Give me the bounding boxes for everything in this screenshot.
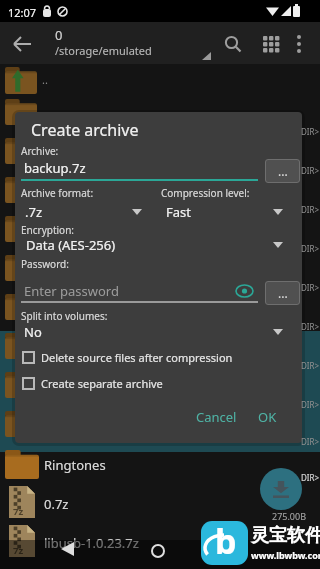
staticText: DIR> (301, 321, 320, 332)
staticText: DIR> (301, 399, 320, 410)
staticText: DIR> (301, 436, 320, 447)
button[interactable] (260, 468, 302, 510)
staticText: ... (278, 285, 288, 301)
staticText: Encryption: (21, 223, 75, 237)
button[interactable] (161, 199, 286, 219)
button[interactable] (22, 351, 35, 364)
button[interactable] (52, 536, 82, 562)
button[interactable]: OK (258, 408, 277, 426)
button[interactable] (22, 377, 35, 390)
staticText: b (215, 521, 237, 562)
staticText: DIR> (301, 282, 320, 293)
button[interactable] (233, 282, 255, 300)
staticText: DIR> (301, 204, 320, 215)
button[interactable] (286, 29, 312, 59)
staticText: Create archive (31, 119, 139, 141)
staticText: libusb-1.0.23.7z (44, 534, 139, 552)
staticText: Enter password (24, 282, 119, 300)
button[interactable]: ... (265, 159, 300, 183)
button[interactable] (21, 321, 286, 341)
staticText: DIR> (301, 360, 320, 371)
button[interactable]: ... (265, 281, 300, 305)
staticText: Create separate archive (41, 376, 163, 391)
staticText: Ringtones (44, 456, 106, 474)
button[interactable] (21, 232, 286, 252)
button[interactable] (0, 487, 320, 526)
button[interactable] (6, 28, 38, 60)
staticText: 灵宝软件 (251, 524, 320, 547)
staticText: 275.00B (272, 510, 307, 522)
staticText: /storage/emulated (55, 43, 152, 58)
staticText: No (24, 323, 42, 341)
staticText: Password: (21, 257, 69, 271)
staticText: www.lbwbw.com (251, 549, 320, 561)
staticText: 0.7z (44, 495, 69, 513)
staticText: 7z (13, 505, 24, 518)
staticText: DIR> (301, 472, 320, 483)
staticText: Delete source files after compression (41, 350, 233, 365)
staticText: .7z (25, 203, 43, 221)
staticText: Split into volumes: (21, 309, 108, 323)
button[interactable] (256, 29, 286, 59)
staticText: .. (42, 72, 48, 87)
button[interactable] (21, 199, 146, 219)
staticText: Archive: (21, 144, 59, 158)
button[interactable]: Cancel (196, 408, 237, 426)
staticText: Compression level: (161, 186, 250, 200)
button[interactable] (218, 29, 248, 59)
staticText: 7z (13, 544, 24, 557)
staticText: ... (278, 163, 288, 179)
staticText: Archive format: (21, 186, 94, 200)
button[interactable] (0, 526, 320, 565)
staticText: DIR> (301, 165, 320, 176)
button[interactable] (143, 538, 173, 564)
staticText: Data (AES-256) (26, 236, 116, 254)
button[interactable] (0, 448, 320, 487)
staticText: backup.7z (24, 159, 86, 177)
staticText: 12:07 (8, 5, 37, 20)
staticText: 0 (55, 26, 63, 44)
staticText: DIR> (301, 243, 320, 254)
staticText: Fast (166, 203, 191, 221)
staticText: DIR> (301, 126, 320, 137)
